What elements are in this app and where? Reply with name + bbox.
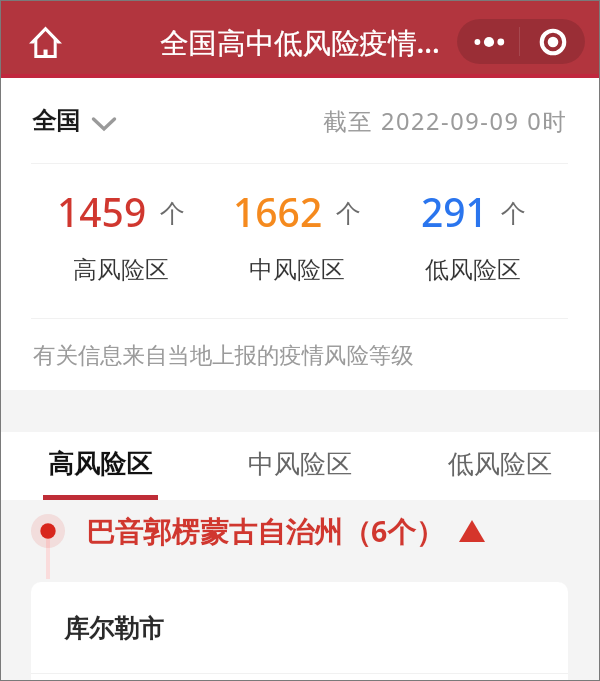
staticText: 中风险区 <box>248 448 352 481</box>
button[interactable]: Close <box>521 19 585 64</box>
button[interactable]: 全国 <box>32 106 116 136</box>
button[interactable]: 高风险区 <box>0 432 200 500</box>
button[interactable]: 低风险区 <box>400 432 600 500</box>
staticText: 高风险区 <box>48 448 152 481</box>
staticText: 高风险区 <box>73 255 169 285</box>
button[interactable]: 1662 <box>209 164 385 318</box>
staticText: 1662 <box>233 185 323 238</box>
button[interactable]: More options <box>457 19 520 64</box>
button[interactable]: 1459 <box>33 164 209 318</box>
button[interactable]: 巴音郭楞蒙古自治州（6个） <box>31 500 600 562</box>
staticText: 个 <box>336 198 361 229</box>
staticText: 巴音郭楞蒙古自治州（6个） <box>86 512 445 551</box>
staticText: 库尔勒市 <box>64 613 164 644</box>
staticText: 截至 2022-09-09 0时 <box>323 105 568 137</box>
staticText: 全国 <box>32 106 80 136</box>
button[interactable]: 中风险区 <box>200 432 400 500</box>
staticText: 个 <box>501 198 526 229</box>
staticText: 中风险区 <box>249 255 345 285</box>
staticText: 个 <box>160 198 185 229</box>
button[interactable]: Home <box>13 10 78 75</box>
staticText: 有关信息来自当地上报的疫情风险等级 <box>33 341 414 369</box>
staticText: 291 <box>421 185 488 238</box>
button[interactable]: 291 <box>385 164 561 318</box>
staticText: 低风险区 <box>448 448 552 481</box>
staticText: 全国高中低风险疫情... <box>160 23 440 62</box>
staticText: 低风险区 <box>425 255 521 285</box>
staticText: 1459 <box>57 185 147 238</box>
